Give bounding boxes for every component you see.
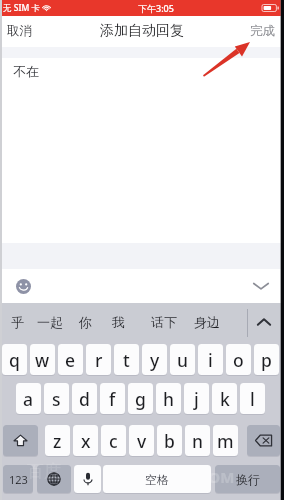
staticText: 换行 <box>236 472 260 487</box>
staticText: s <box>52 387 61 411</box>
staticText: 你 <box>79 314 92 330</box>
staticText: o <box>233 348 244 372</box>
button[interactable]: g <box>128 383 153 414</box>
button[interactable]: Expand candidates <box>248 303 280 340</box>
staticText: a <box>23 387 34 411</box>
staticText: v <box>137 429 147 453</box>
staticText: n <box>192 429 203 453</box>
button[interactable]: u <box>170 344 195 375</box>
button[interactable]: Backspace <box>247 425 280 456</box>
button[interactable]: Shift <box>3 425 38 456</box>
button[interactable]: z <box>45 425 70 456</box>
button[interactable]: b <box>157 425 182 456</box>
button[interactable]: Emoji <box>16 279 31 294</box>
staticText: p <box>261 348 272 372</box>
staticText: k <box>220 387 230 411</box>
staticText: 添加自动回复 <box>100 22 184 40</box>
staticText: e <box>65 348 76 372</box>
staticText: 乎 <box>11 314 24 330</box>
button[interactable]: a <box>16 383 41 414</box>
staticText: 无 SIM 卡 <box>3 2 40 14</box>
button[interactable]: f <box>100 383 125 414</box>
staticText: z <box>53 429 62 453</box>
button[interactable]: h <box>156 383 181 414</box>
button[interactable]: 一起 <box>37 303 63 340</box>
button[interactable]: 话下 <box>151 303 177 340</box>
button[interactable]: r <box>86 344 111 375</box>
staticText: 话下 <box>151 314 177 330</box>
button[interactable]: n <box>185 425 210 456</box>
staticText: 一起 <box>37 314 63 330</box>
staticText: d <box>79 387 90 411</box>
button[interactable]: j <box>184 383 209 414</box>
staticText: h <box>163 387 174 411</box>
button[interactable]: w <box>30 344 55 375</box>
button[interactable]: Switch input language <box>37 465 71 493</box>
button[interactable]: 我 <box>112 303 125 340</box>
button[interactable]: 123 <box>3 465 33 493</box>
staticText: 身边 <box>194 314 220 330</box>
button[interactable]: 完成 <box>245 18 280 44</box>
button[interactable]: p <box>254 344 279 375</box>
button[interactable]: m <box>213 425 238 456</box>
button[interactable]: k <box>212 383 237 414</box>
staticText: r <box>95 348 103 372</box>
staticText: q <box>9 348 20 372</box>
button[interactable]: 换行 <box>215 465 280 493</box>
staticText: b <box>164 429 175 453</box>
button[interactable]: x <box>73 425 98 456</box>
button[interactable]: Voice input <box>74 465 101 493</box>
button[interactable]: v <box>129 425 154 456</box>
button[interactable]: d <box>72 383 97 414</box>
staticText: COM <box>199 467 235 487</box>
staticText: g <box>135 387 146 411</box>
staticText: y <box>150 348 160 372</box>
staticText: l <box>250 387 255 411</box>
button[interactable]: 乎 <box>11 303 24 340</box>
staticText: 不在 <box>13 63 39 79</box>
button[interactable]: c <box>101 425 126 456</box>
button[interactable]: Hide keyboard <box>250 277 272 295</box>
button[interactable]: i <box>198 344 223 375</box>
button[interactable]: l <box>240 383 265 414</box>
staticText: i <box>208 348 213 372</box>
staticText: j <box>194 387 199 411</box>
button[interactable]: 空格 <box>103 465 211 493</box>
button[interactable]: s <box>44 383 69 414</box>
staticText: 取消 <box>7 23 32 39</box>
staticText: 下午3:05 <box>138 2 174 14</box>
staticText: x <box>81 429 91 453</box>
button[interactable]: o <box>226 344 251 375</box>
button[interactable]: q <box>2 344 27 375</box>
button[interactable]: t <box>114 344 139 375</box>
staticText: 123 <box>9 472 28 487</box>
staticText: f <box>109 387 116 411</box>
staticText: m <box>217 429 234 453</box>
staticText: 百度 <box>27 461 61 482</box>
button[interactable]: e <box>58 344 83 375</box>
staticText: u <box>177 348 188 372</box>
staticText: w <box>35 348 50 372</box>
staticText: 我 <box>112 314 125 330</box>
button[interactable]: y <box>142 344 167 375</box>
button[interactable]: 取消 <box>2 18 37 44</box>
button[interactable]: 身边 <box>194 303 220 340</box>
staticText: c <box>109 429 118 453</box>
staticText: 空格 <box>145 472 169 487</box>
staticText: t <box>123 348 130 372</box>
staticText: 完成 <box>250 23 275 39</box>
button[interactable]: 你 <box>79 303 92 340</box>
